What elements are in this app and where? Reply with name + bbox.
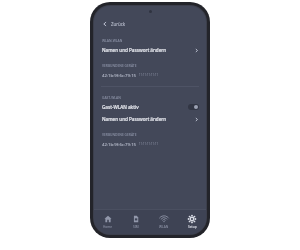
- staticText: 11:11:11:11:11: [139, 142, 158, 146]
- staticText: Setup: [188, 225, 197, 229]
- staticText: Namen und Passwort ändern: [102, 47, 194, 53]
- button[interactable]: 42:1b:9f:6c:79:15: [94, 69, 206, 80]
- staticText: VERBUNDENE GERÄTE: [102, 63, 137, 67]
- staticText: GAST-WLAN: [102, 95, 121, 99]
- button[interactable]: Setup: [178, 210, 206, 234]
- button[interactable]: Home: [94, 210, 122, 234]
- button[interactable]: SIM: [122, 210, 150, 234]
- button[interactable]: WLAN: [150, 210, 178, 234]
- button[interactable]: Gast-WLAN aktiv: [94, 101, 206, 113]
- staticText: 42:1b:9f:6c:79:15: [102, 72, 137, 78]
- button[interactable]: Namen und Passwort ändern: [94, 113, 206, 125]
- staticText: VERBUNDENE GERÄTE: [102, 132, 137, 136]
- button[interactable]: 42:1b:9f:6c:79:15: [94, 138, 206, 149]
- staticText: 42:1b:9f:6c:79:15: [102, 141, 137, 147]
- staticText: 11:11:11:11:11: [139, 73, 158, 77]
- staticText: Gast-WLAN aktiv: [102, 104, 188, 110]
- button[interactable]: Namen und Passwort ändern: [94, 44, 206, 56]
- staticText: Home: [103, 225, 113, 229]
- staticText: WLAN-WLAN: [102, 38, 123, 42]
- button[interactable]: Zurück: [94, 17, 206, 31]
- staticText: Zurück: [111, 21, 126, 27]
- staticText: SIM: [133, 225, 139, 229]
- button[interactable]: Gast-WLAN umschalten: [188, 104, 199, 110]
- staticText: Namen und Passwort ändern: [102, 116, 194, 122]
- staticText: WLAN: [159, 225, 169, 229]
